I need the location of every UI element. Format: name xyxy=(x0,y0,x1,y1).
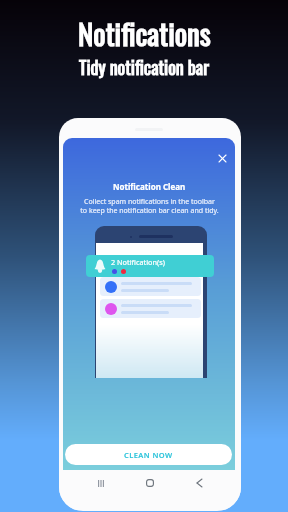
staticText: CLEAN NOW xyxy=(124,450,173,460)
button[interactable]: Close xyxy=(210,146,234,170)
staticText: Collect spam notifications in the toolba… xyxy=(80,197,219,215)
staticText: 2 Notification(s) xyxy=(111,257,165,267)
button[interactable]: Home xyxy=(135,474,165,492)
staticText: Tidy notification bar xyxy=(79,54,210,81)
staticText: Notification Clean xyxy=(113,181,186,192)
button[interactable]: Recents xyxy=(86,474,116,492)
staticText: Notifications xyxy=(78,11,211,54)
button[interactable]: Back xyxy=(184,474,214,492)
button[interactable]: CLEAN NOW xyxy=(65,444,232,465)
